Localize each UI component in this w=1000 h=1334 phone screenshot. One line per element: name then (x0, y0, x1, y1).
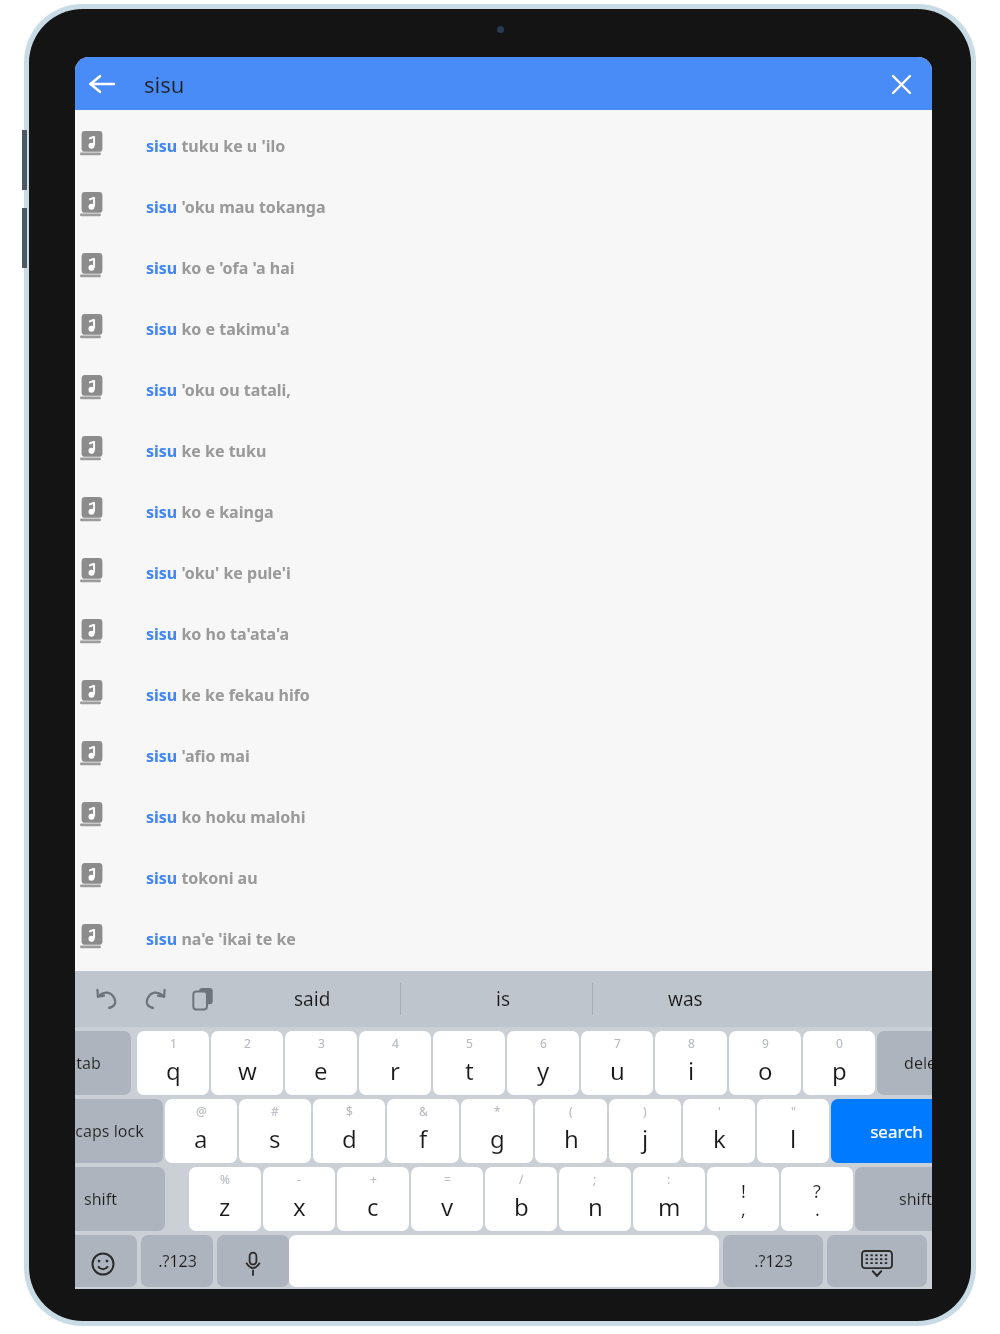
staticText: sisu ko hoku malohi (146, 806, 306, 828)
button[interactable] (217, 1235, 289, 1287)
staticText: r (390, 1054, 400, 1087)
button[interactable]: sisu 'oku mau tokanga (75, 176, 932, 237)
button[interactable]: = (411, 1167, 483, 1231)
button[interactable]: " (757, 1099, 829, 1163)
button[interactable] (827, 1235, 927, 1287)
staticText: sisu tokoni au (146, 867, 258, 889)
staticText: " (791, 1103, 796, 1119)
button[interactable]: + (337, 1167, 409, 1231)
button[interactable]: sisu ke ke tuku (75, 420, 932, 481)
button[interactable]: was (625, 979, 745, 1019)
button[interactable]: .?123 (723, 1235, 823, 1287)
button[interactable]: shift (75, 1167, 165, 1231)
button[interactable]: 0 (803, 1031, 875, 1095)
staticText: 2 (244, 1035, 251, 1051)
button[interactable]: & (387, 1099, 459, 1163)
button[interactable]: 1 (137, 1031, 209, 1095)
staticText: z (219, 1190, 231, 1223)
button[interactable]: Hide keyboard (831, 1241, 923, 1287)
button[interactable]: 2 (211, 1031, 283, 1095)
staticText: delete (904, 1052, 932, 1074)
button[interactable]: 5 (433, 1031, 505, 1095)
staticText: ' (718, 1103, 721, 1119)
button[interactable]: ' (683, 1099, 755, 1163)
button[interactable]: sisu ko e kainga (75, 481, 932, 542)
button[interactable]: sisu ko e 'ofa 'a hai (75, 237, 932, 298)
button[interactable]: search (831, 1099, 932, 1163)
staticText: l (790, 1122, 797, 1155)
button[interactable]: delete (877, 1031, 932, 1095)
button[interactable]: ? (781, 1167, 853, 1231)
staticText: tab (76, 1052, 101, 1074)
button[interactable]: 7 (581, 1031, 653, 1095)
staticText: sisu ke ke fekau hifo (146, 684, 310, 706)
staticText: g (490, 1122, 505, 1155)
staticText: ) (643, 1103, 647, 1119)
button[interactable]: ) (609, 1099, 681, 1163)
button[interactable]: sisu 'afio mai (75, 725, 932, 786)
staticText: = (444, 1171, 451, 1187)
button[interactable]: sisu 'oku' ke pule'i (75, 542, 932, 603)
button[interactable]: Redo (137, 981, 173, 1017)
button[interactable]: # (239, 1099, 311, 1163)
staticText: # (271, 1103, 279, 1119)
button[interactable]: Undo (89, 981, 125, 1017)
button[interactable]: * (461, 1099, 533, 1163)
button[interactable]: sisu ko e takimu'a (75, 298, 932, 359)
button[interactable]: said (252, 979, 372, 1019)
button[interactable]: 9 (729, 1031, 801, 1095)
staticText: p (832, 1054, 847, 1087)
staticText: x (293, 1190, 306, 1223)
staticText: 6 (540, 1035, 547, 1051)
button[interactable]: .?123 (141, 1235, 213, 1287)
staticText: shift (899, 1188, 932, 1210)
staticText: .?123 (158, 1250, 197, 1272)
button[interactable]: - (263, 1167, 335, 1231)
staticText: ( (569, 1103, 573, 1119)
button[interactable]: @ (165, 1099, 237, 1163)
button[interactable]: Back (75, 57, 129, 110)
staticText: sisu ko e kainga (146, 501, 274, 523)
staticText: a (194, 1122, 208, 1155)
button[interactable]: ; (559, 1167, 631, 1231)
button[interactable]: 6 (507, 1031, 579, 1095)
staticText: is (496, 986, 511, 1012)
staticText: .?123 (754, 1250, 793, 1272)
staticText: was (668, 986, 703, 1012)
button[interactable]: tab (75, 1031, 131, 1095)
staticText: w (238, 1054, 257, 1087)
button[interactable] (75, 1235, 137, 1287)
button[interactable]: Emoji (77, 1241, 129, 1287)
button[interactable]: sisu 'oku ou tatali, (75, 359, 932, 420)
staticText: sisu 'oku' ke pule'i (146, 562, 291, 584)
staticText: 4 (392, 1035, 399, 1051)
staticText: 1 (170, 1035, 177, 1051)
button[interactable]: % (189, 1167, 261, 1231)
staticText: ; (593, 1171, 597, 1187)
button[interactable]: is (443, 979, 563, 1019)
button[interactable]: sisu na'e 'ikai te ke (75, 908, 932, 969)
staticText: / (519, 1171, 524, 1187)
button[interactable]: sisu ke ke fekau hifo (75, 664, 932, 725)
button[interactable]: caps lock (75, 1099, 163, 1163)
staticText: f (419, 1122, 428, 1155)
button[interactable]: 4 (359, 1031, 431, 1095)
button[interactable]: ( (535, 1099, 607, 1163)
button[interactable]: sisu tokoni au (75, 847, 932, 908)
button[interactable]: ! (707, 1167, 779, 1231)
button[interactable]: sisu tuku ke u 'ilo (75, 115, 932, 176)
button[interactable]: : (633, 1167, 705, 1231)
button[interactable]: Paste (185, 981, 221, 1017)
button[interactable]: Clear search (878, 61, 924, 107)
button[interactable]: $ (313, 1099, 385, 1163)
button[interactable]: sisu ko ho ta'ata'a (75, 603, 932, 664)
button[interactable]: Dictation (221, 1241, 285, 1287)
staticText: 5 (466, 1035, 473, 1051)
staticText: said (294, 986, 331, 1012)
button[interactable]: 8 (655, 1031, 727, 1095)
button[interactable]: / (485, 1167, 557, 1231)
button[interactable]: 3 (285, 1031, 357, 1095)
button[interactable]: shift (855, 1167, 932, 1231)
button[interactable]: sisu ko hoku malohi (75, 786, 932, 847)
